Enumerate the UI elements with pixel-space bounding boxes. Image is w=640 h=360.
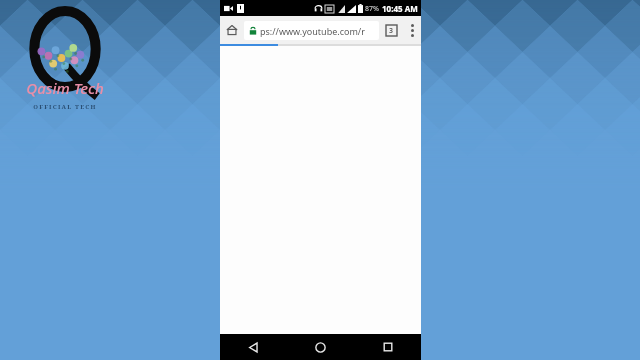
button[interactable]: ps://www.youtube.com/r (244, 21, 379, 40)
staticText: 87% (365, 4, 379, 14)
staticText: ps://www.youtube.com/r (260, 25, 365, 37)
staticText: Qasim Tech (26, 78, 104, 98)
button[interactable]: Tabs (379, 16, 403, 44)
button[interactable]: Home (287, 334, 354, 360)
staticText: 10:45 AM (382, 3, 418, 14)
button[interactable]: Home (220, 16, 244, 44)
button[interactable]: Recent apps (354, 334, 421, 360)
staticText: OFFICIAL TECH (33, 103, 97, 111)
button[interactable]: Back (220, 334, 287, 360)
button[interactable]: More options (403, 16, 421, 44)
staticText: 3 (389, 26, 394, 36)
